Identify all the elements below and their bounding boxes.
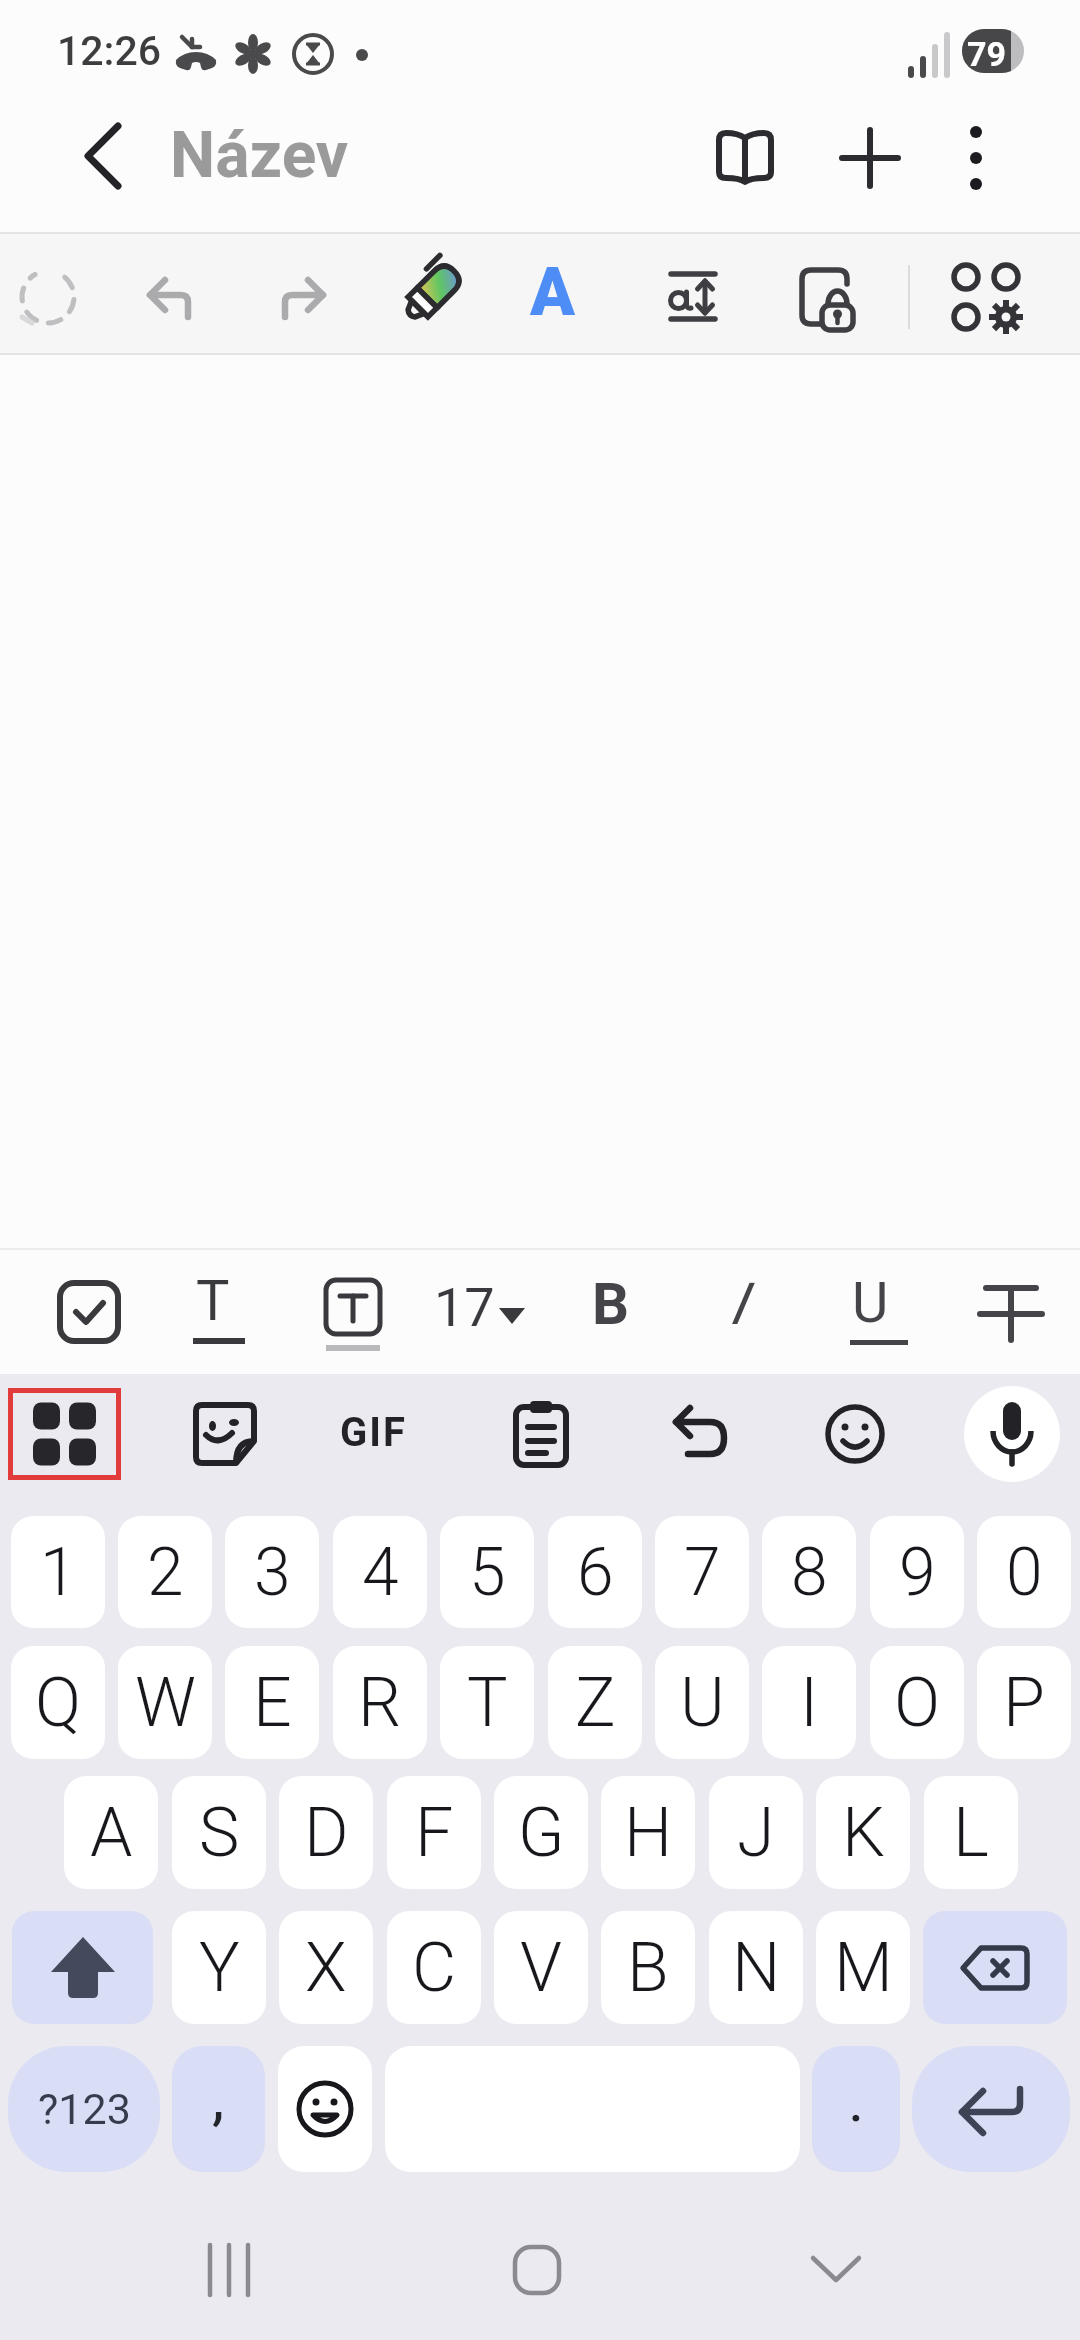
button[interactable]: . <box>812 2046 900 2172</box>
staticText: F <box>415 1793 454 1873</box>
button[interactable] <box>824 1403 886 1465</box>
staticText: K <box>842 1793 885 1873</box>
button[interactable]: 0 <box>977 1516 1071 1628</box>
button[interactable]: Q <box>11 1646 105 1759</box>
button[interactable]: 2 <box>118 1516 212 1628</box>
button[interactable]: 4 <box>333 1516 427 1628</box>
staticText: 17 <box>434 1276 495 1339</box>
staticText: S <box>199 1793 240 1873</box>
button[interactable] <box>964 1386 1060 1482</box>
button[interactable] <box>923 1911 1067 2024</box>
staticText: 5 <box>469 1534 506 1611</box>
button[interactable] <box>664 266 722 328</box>
button[interactable]: ?123 <box>8 2046 160 2172</box>
button[interactable]: V <box>494 1911 588 2024</box>
button[interactable]: 8 <box>762 1516 856 1628</box>
button[interactable] <box>960 126 992 190</box>
staticText: 3 <box>254 1534 291 1611</box>
button[interactable] <box>145 275 195 319</box>
staticText: Y <box>199 1928 240 2008</box>
staticText: . <box>848 2063 865 2136</box>
staticText: C <box>412 1928 457 2008</box>
staticText: P <box>1003 1663 1045 1743</box>
staticText: Z <box>575 1663 616 1743</box>
button[interactable]: A <box>64 1776 158 1889</box>
button[interactable] <box>950 261 1022 333</box>
button[interactable]: , <box>172 2046 265 2172</box>
button[interactable] <box>794 263 866 335</box>
button[interactable]: 3 <box>225 1516 319 1628</box>
staticText: M <box>834 1928 893 2008</box>
staticText: O <box>894 1663 941 1743</box>
staticText: 1 <box>40 1534 77 1611</box>
button[interactable]: 9 <box>870 1516 964 1628</box>
button[interactable]: K <box>816 1776 910 1889</box>
button[interactable]: F <box>387 1776 481 1889</box>
button[interactable]: P <box>977 1646 1071 1759</box>
button[interactable]: W <box>118 1646 212 1759</box>
staticText: N <box>732 1928 781 2008</box>
button[interactable]: N <box>709 1911 803 2024</box>
button[interactable] <box>56 1279 122 1345</box>
button[interactable] <box>278 275 328 319</box>
staticText: 2 <box>147 1534 184 1611</box>
staticText: W <box>135 1663 196 1743</box>
button[interactable]: 1 <box>11 1516 105 1628</box>
button[interactable] <box>842 130 898 186</box>
button[interactable]: 5 <box>440 1516 534 1628</box>
button[interactable] <box>978 1282 1044 1344</box>
button[interactable] <box>486 2220 590 2320</box>
button[interactable] <box>322 1276 384 1352</box>
button[interactable] <box>192 1401 258 1467</box>
button[interactable]: L <box>924 1776 1018 1889</box>
button[interactable]: B <box>601 1911 695 2024</box>
button[interactable]: G <box>494 1776 588 1889</box>
button[interactable] <box>12 1911 153 2024</box>
button[interactable]: 7 <box>655 1516 749 1628</box>
staticText: X <box>305 1928 347 2008</box>
button[interactable] <box>784 2220 888 2320</box>
button[interactable] <box>8 1388 121 1480</box>
button[interactable]: M <box>816 1911 910 2024</box>
button[interactable]: O <box>870 1646 964 1759</box>
button[interactable] <box>716 130 774 184</box>
staticText: , <box>212 2061 225 2134</box>
button[interactable] <box>278 2046 372 2172</box>
button[interactable] <box>668 1406 730 1462</box>
button[interactable]: S <box>172 1776 266 1889</box>
staticText: H <box>624 1793 673 1873</box>
button[interactable]: Z <box>548 1646 642 1759</box>
button[interactable] <box>392 257 468 333</box>
staticText: V <box>520 1928 562 2008</box>
button[interactable]: D <box>279 1776 373 1889</box>
button[interactable]: U <box>655 1646 749 1759</box>
staticText: GIF <box>340 1409 407 1456</box>
button[interactable]: I <box>762 1646 856 1759</box>
button[interactable]: R <box>333 1646 427 1759</box>
staticText: Název <box>170 118 349 193</box>
button[interactable] <box>80 122 128 190</box>
button[interactable]: 6 <box>548 1516 642 1628</box>
button[interactable]: X <box>279 1911 373 2024</box>
staticText: 9 <box>899 1534 936 1611</box>
button[interactable]: Y <box>172 1911 266 2024</box>
button[interactable] <box>18 265 82 329</box>
staticText: 79 <box>967 34 1007 74</box>
button[interactable]: J <box>709 1776 803 1889</box>
button[interactable]: C <box>387 1911 481 2024</box>
button[interactable] <box>912 2046 1070 2172</box>
button[interactable] <box>180 2220 284 2320</box>
staticText: A <box>530 254 575 331</box>
staticText: E <box>253 1663 292 1743</box>
button[interactable]: E <box>225 1646 319 1759</box>
staticText: T <box>467 1663 508 1743</box>
button[interactable]: H <box>601 1776 695 1889</box>
button[interactable] <box>510 1399 572 1469</box>
staticText: B <box>592 1270 630 1338</box>
staticText: U <box>852 1270 889 1336</box>
button[interactable]: T <box>440 1646 534 1759</box>
staticText: A <box>90 1793 133 1873</box>
staticText: U <box>680 1663 725 1743</box>
staticText: I <box>800 1663 819 1743</box>
